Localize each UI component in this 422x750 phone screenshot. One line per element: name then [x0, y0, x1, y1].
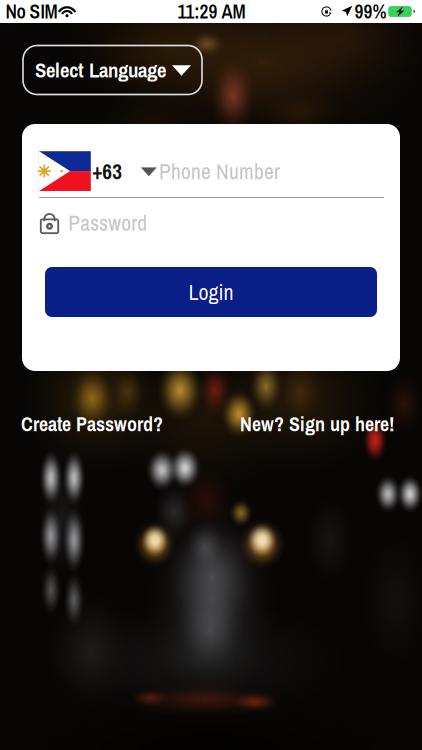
staticText: Create Password?	[21, 410, 163, 437]
staticText: No SIM	[5, 0, 57, 24]
button[interactable]: Select Language	[23, 45, 202, 94]
button[interactable]: New? Sign up here!	[240, 410, 394, 437]
staticText: Password	[68, 209, 147, 237]
staticText: Login	[188, 277, 233, 307]
staticText: 11:29 AM	[177, 0, 245, 24]
staticText: +63	[92, 157, 122, 186]
button[interactable]: Create Password?	[21, 410, 163, 437]
staticText: New? Sign up here!	[240, 410, 394, 437]
staticText: Select Language	[35, 56, 166, 84]
staticText: 99%	[354, 0, 386, 24]
button[interactable]: Login	[45, 267, 377, 317]
staticText: Phone Number	[159, 157, 280, 186]
